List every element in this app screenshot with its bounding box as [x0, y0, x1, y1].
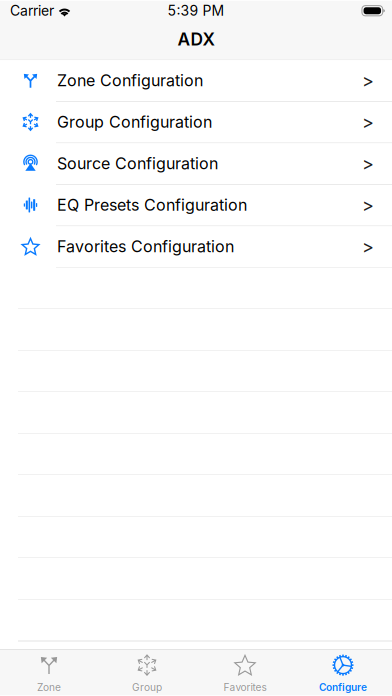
button[interactable]: Source Configuration: [0, 143, 392, 185]
button[interactable]: Zone: [0, 649, 98, 695]
button[interactable]: Group: [98, 649, 196, 695]
staticText: Favorites Configuration: [57, 237, 234, 256]
button[interactable]: Favorites: [196, 649, 294, 695]
button[interactable]: Group Configuration: [0, 102, 392, 143]
staticText: 5:39 PM: [167, 2, 224, 19]
staticText: >: [362, 70, 374, 91]
button[interactable]: EQ Presets Configuration: [0, 185, 392, 226]
staticText: Favorites: [223, 681, 266, 693]
staticText: >: [362, 236, 374, 257]
button[interactable]: Favorites Configuration: [0, 226, 392, 268]
staticText: >: [362, 111, 374, 133]
staticText: Zone: [37, 681, 61, 693]
button[interactable]: Zone Configuration: [0, 60, 392, 102]
staticText: EQ Presets Configuration: [57, 195, 247, 215]
staticText: >: [362, 194, 374, 216]
staticText: >: [362, 153, 374, 174]
staticText: Carrier: [10, 2, 54, 19]
button[interactable]: Configure: [294, 649, 392, 695]
staticText: Source Configuration: [57, 154, 218, 173]
staticText: Group Configuration: [57, 112, 212, 132]
staticText: Zone Configuration: [57, 71, 203, 90]
staticText: ADX: [177, 29, 214, 50]
staticText: Configure: [319, 681, 367, 693]
staticText: Group: [132, 681, 162, 693]
